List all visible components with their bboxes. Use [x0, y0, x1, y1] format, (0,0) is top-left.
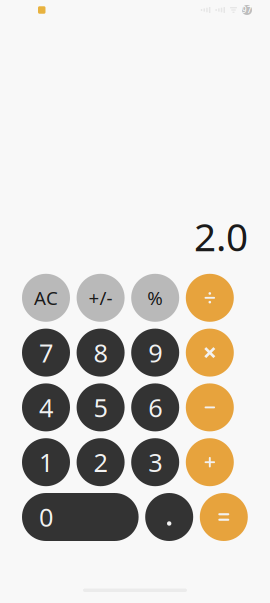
button[interactable]: Divide — [186, 274, 234, 322]
staticText: 9 — [148, 336, 162, 369]
button[interactable]: Add — [186, 438, 234, 486]
button[interactable]: AC — [22, 274, 70, 322]
button[interactable]: 7 — [22, 329, 70, 377]
staticText: 2 — [94, 445, 108, 479]
staticText: 6 — [148, 391, 162, 424]
button[interactable]: Decimal point — [145, 493, 193, 541]
button[interactable]: 5 — [77, 383, 125, 431]
button[interactable]: 8 — [77, 329, 125, 377]
button[interactable]: 9 — [131, 329, 179, 377]
staticText: AC — [34, 285, 58, 310]
button[interactable]: 6 — [131, 383, 179, 431]
staticText: 3 — [148, 445, 162, 479]
staticText: 7 — [39, 336, 53, 369]
button[interactable]: 4 — [22, 383, 70, 431]
button[interactable]: % — [131, 274, 179, 322]
staticText: +/- — [89, 285, 113, 310]
button[interactable]: 1 — [22, 438, 70, 486]
staticText: 0 — [39, 500, 53, 534]
button[interactable]: 0 — [22, 493, 139, 541]
staticText: 1 — [39, 445, 53, 479]
staticText: 2.0 — [194, 210, 248, 262]
staticText: 8 — [94, 336, 108, 369]
button[interactable]: Multiply — [186, 329, 234, 377]
staticText: 5 — [94, 391, 108, 424]
staticText: 4 — [39, 391, 53, 424]
button[interactable]: Subtract — [186, 383, 234, 431]
button[interactable]: Equals — [200, 493, 248, 541]
staticText: % — [147, 285, 163, 310]
button[interactable]: 2 — [77, 438, 125, 486]
button[interactable]: 3 — [131, 438, 179, 486]
button[interactable]: +/- — [77, 274, 125, 322]
staticText: 97 — [242, 5, 252, 15]
